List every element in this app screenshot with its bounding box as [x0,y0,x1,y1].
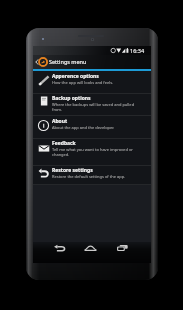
staticText: Backup options [52,95,91,102]
staticText: Where the backups will be saved and pull… [52,102,138,112]
staticText: Restore the default settings of the app. [52,174,126,179]
staticText: Apperence options [52,73,99,80]
button[interactable]: Restore settings [33,166,151,184]
button[interactable]: Back [51,242,67,254]
button[interactable]: Home [82,242,98,254]
button[interactable]: Recents [114,242,130,254]
staticText: 16:34 [130,47,145,54]
staticText: Restore settings [52,167,93,174]
button[interactable]: Apperence options [33,71,151,93]
staticText: How the app will looks and feels. [52,80,114,85]
staticText: Feedback [52,140,76,147]
staticText: Tell me what you want to have improved o… [52,147,138,157]
other: Up [35,57,48,67]
staticText: About [52,118,68,125]
button[interactable]: Feedback [33,139,151,165]
staticText: Settings menu [49,58,87,65]
staticText: About the app and the developer. [52,125,115,130]
button[interactable]: Up [33,55,151,69]
button[interactable]: Backup options [33,94,151,115]
button[interactable]: About [33,116,151,138]
